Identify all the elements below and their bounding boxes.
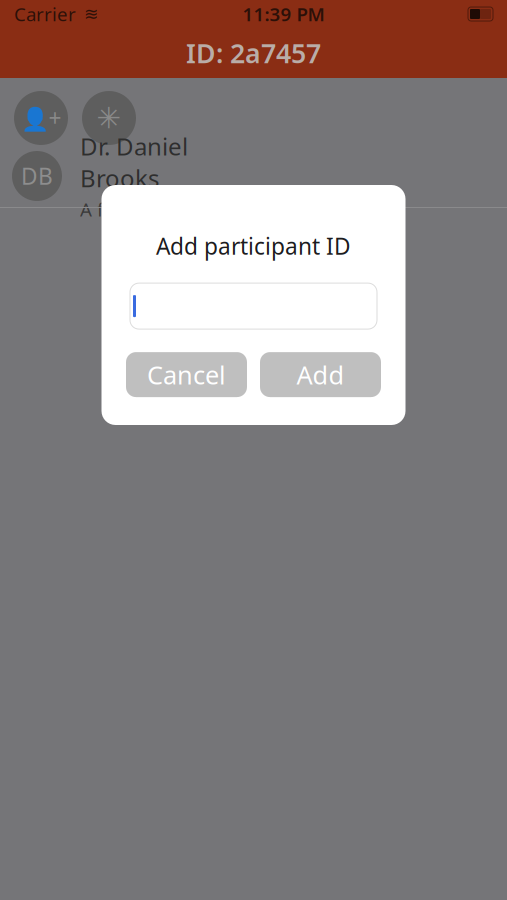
staticText: Add	[296, 358, 344, 391]
button[interactable]: Cancel	[126, 352, 247, 397]
staticText: 11:39 PM	[242, 2, 324, 26]
staticText: Cancel	[147, 358, 226, 391]
button[interactable]: Add participant	[14, 91, 68, 145]
button[interactable]: DB	[0, 145, 507, 207]
staticText: ≋	[84, 4, 99, 24]
staticText: DB	[21, 161, 53, 191]
button[interactable]: Settings	[82, 91, 136, 145]
staticText: ID: 2a7457	[186, 35, 321, 71]
button[interactable]: Add	[260, 352, 381, 397]
staticText: 👤+	[20, 103, 61, 133]
staticText: A few seconds ago	[80, 197, 242, 222]
staticText: ✳︎	[96, 101, 121, 135]
staticText: Dr. Daniel Brooks	[80, 130, 188, 194]
staticText: Carrier	[14, 2, 76, 26]
staticText: Add participant ID	[156, 231, 351, 261]
